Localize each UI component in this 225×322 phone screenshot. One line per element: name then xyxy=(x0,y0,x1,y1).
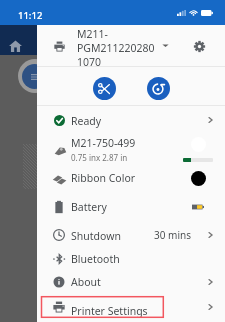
staticText: 0.75 inx 2.87 in xyxy=(71,152,128,163)
staticText: Shutdown xyxy=(71,229,121,243)
button[interactable]: M21-750-499 xyxy=(37,134,225,165)
staticText: PGM211220280 xyxy=(77,41,155,55)
button[interactable]: Menu xyxy=(22,64,47,89)
button[interactable]: Printer Settings xyxy=(37,296,225,318)
button[interactable]: Settings xyxy=(190,37,208,55)
button[interactable]: Bluetooth xyxy=(37,248,225,270)
button[interactable]: Feed xyxy=(147,77,170,100)
staticText: Bluetooth xyxy=(71,252,120,266)
button[interactable]: Battery xyxy=(37,192,225,221)
staticText: Printer Settings xyxy=(71,304,148,318)
button[interactable]: Ribbon Color xyxy=(37,165,225,192)
button[interactable]: Cut xyxy=(93,77,116,100)
button[interactable]: Shutdown xyxy=(37,221,225,248)
staticText: Ready xyxy=(71,114,102,128)
staticText: 1070 xyxy=(77,55,102,68)
staticText: 11:12 xyxy=(18,9,43,22)
staticText: Ribbon Color xyxy=(71,171,136,185)
staticText: M211- xyxy=(77,27,108,41)
button[interactable]: Select printer xyxy=(157,37,173,53)
button[interactable]: Home xyxy=(5,36,25,56)
staticText: M21-750-499 xyxy=(71,136,136,150)
button[interactable]: Ready xyxy=(37,106,225,134)
button[interactable]: About xyxy=(37,270,225,293)
staticText: Battery xyxy=(71,200,107,214)
staticText: 30 mins xyxy=(154,228,191,242)
staticText: About xyxy=(71,275,101,289)
